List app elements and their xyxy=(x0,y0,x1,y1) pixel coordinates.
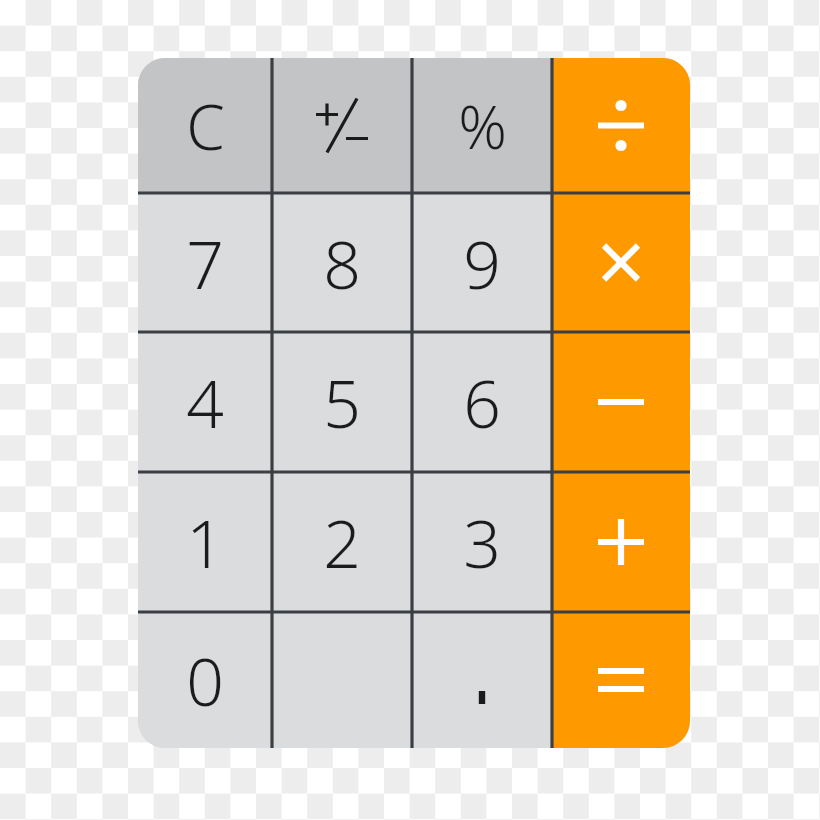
staticText: 5 xyxy=(323,357,361,447)
button[interactable]: 3 xyxy=(412,472,552,612)
button[interactable]: 6 xyxy=(412,332,552,472)
staticText: 9 xyxy=(463,218,501,308)
button[interactable]: 0 xyxy=(138,612,272,748)
staticText: % xyxy=(458,85,507,167)
button[interactable]: 5 xyxy=(272,332,412,472)
staticText: 4 xyxy=(186,357,224,447)
staticText: 0 xyxy=(186,635,224,725)
button[interactable] xyxy=(272,612,412,748)
button[interactable]: 1 xyxy=(138,472,272,612)
button[interactable]: Divide xyxy=(552,58,690,193)
button[interactable]: 8 xyxy=(272,193,412,332)
staticText: 2 xyxy=(323,497,361,587)
button[interactable]: Decimal point xyxy=(412,612,552,748)
button[interactable]: 2 xyxy=(272,472,412,612)
staticText: C xyxy=(186,84,225,168)
staticText: 6 xyxy=(463,357,501,447)
button[interactable]: Equals xyxy=(552,612,690,748)
button[interactable]: % xyxy=(412,58,552,193)
button[interactable]: Toggle sign xyxy=(272,58,412,193)
button[interactable]: 9 xyxy=(412,193,552,332)
button[interactable]: 4 xyxy=(138,332,272,472)
button[interactable]: Add xyxy=(552,472,690,612)
button[interactable]: C xyxy=(138,58,272,193)
button[interactable]: Subtract xyxy=(552,332,690,472)
button[interactable]: 7 xyxy=(138,193,272,332)
staticText: 8 xyxy=(323,218,361,308)
staticText: 1 xyxy=(186,497,224,587)
staticText: 3 xyxy=(463,497,501,587)
button[interactable]: Multiply xyxy=(552,193,690,332)
staticText: 7 xyxy=(186,218,224,308)
